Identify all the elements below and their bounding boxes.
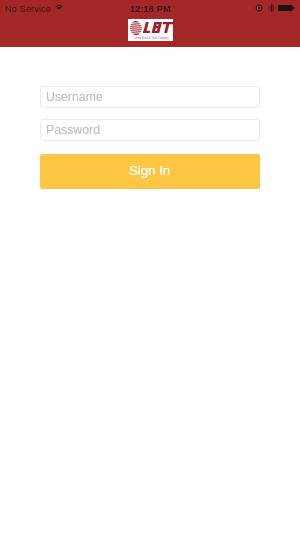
staticText: Sign In — [129, 163, 171, 178]
staticText: Lamar Bank & Trust Company — [134, 37, 169, 40]
staticText: Username — [46, 90, 103, 104]
button[interactable]: Username — [40, 86, 260, 108]
staticText: Password — [46, 123, 100, 137]
button[interactable]: Sign In — [40, 154, 260, 189]
staticText: No Service — [5, 3, 51, 14]
button[interactable]: Password — [40, 119, 260, 141]
staticText: 12:16 PM — [130, 3, 171, 14]
